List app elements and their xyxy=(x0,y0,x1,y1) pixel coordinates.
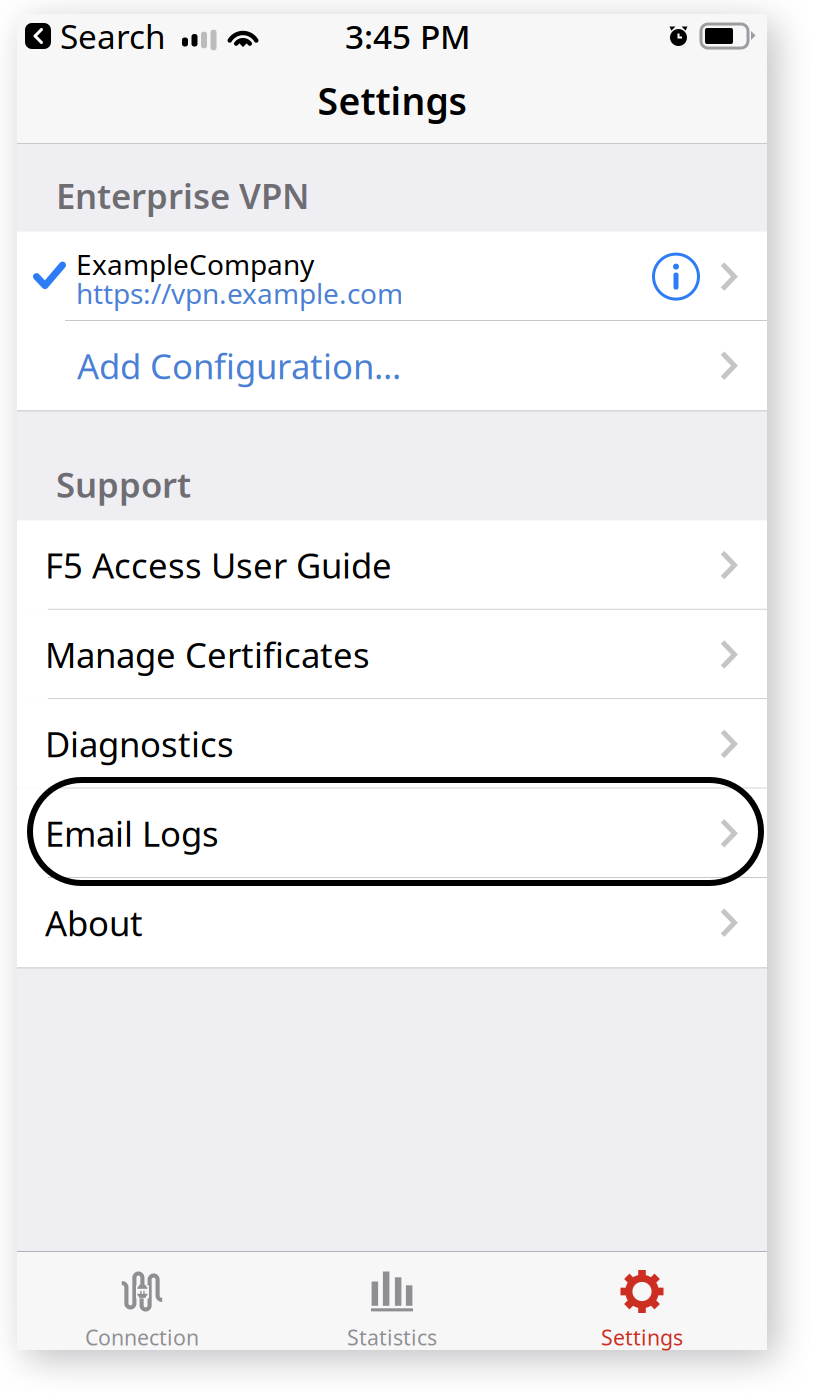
staticText: Connection xyxy=(85,1323,199,1351)
button[interactable]: Email Logs xyxy=(17,789,767,878)
button[interactable]: Statistics xyxy=(267,1251,517,1350)
staticText: Manage Certificates xyxy=(45,631,370,677)
staticText: ExampleCompany xyxy=(76,246,314,283)
staticText: 3:45 PM xyxy=(345,14,471,58)
staticText: Settings xyxy=(317,76,466,125)
button[interactable]: Diagnostics xyxy=(17,699,767,789)
staticText: F5 Access User Guide xyxy=(45,542,392,588)
button[interactable]: Manage Certificates xyxy=(17,610,767,699)
button[interactable]: F5 Access User Guide xyxy=(17,520,767,610)
staticText: https://vpn.example.com xyxy=(76,275,403,312)
button[interactable]: Add Configuration... xyxy=(17,321,767,410)
button[interactable]: Back to Search xyxy=(25,14,166,58)
button[interactable]: Settings xyxy=(517,1251,767,1350)
staticText: Search xyxy=(60,14,166,58)
button[interactable]: About xyxy=(17,878,767,967)
staticText: Enterprise VPN xyxy=(56,173,309,219)
staticText: Settings xyxy=(601,1323,683,1351)
staticText: Diagnostics xyxy=(45,721,234,767)
staticText: About xyxy=(45,900,143,946)
button[interactable]: Connection xyxy=(17,1251,267,1350)
staticText: Add Configuration... xyxy=(77,343,401,389)
button[interactable]: ExampleCompany xyxy=(17,232,767,321)
staticText: Support xyxy=(56,461,191,507)
staticText: Statistics xyxy=(347,1323,437,1351)
staticText: Email Logs xyxy=(45,810,219,856)
